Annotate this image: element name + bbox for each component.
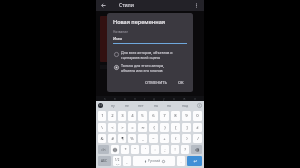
staticText: ]: [186, 125, 188, 131]
staticText: }: [164, 125, 166, 131]
staticText: Название: [113, 30, 128, 34]
staticText: к: [104, 97, 106, 101]
button[interactable]: ': [141, 145, 149, 154]
staticText: 1: [101, 113, 104, 119]
button[interactable]: ну: [110, 102, 116, 109]
button[interactable]: !: [171, 145, 179, 154]
button[interactable]: ОК: [175, 78, 187, 87]
button[interactable]: 9: [182, 111, 191, 121]
button[interactable]: ]: [182, 123, 191, 132]
staticText: сценариев всей сцены: [121, 55, 161, 60]
staticText: /: [197, 136, 199, 142]
staticText: %: [130, 136, 134, 142]
button[interactable]: 5: [138, 111, 147, 121]
button[interactable]: −: [149, 134, 158, 143]
button[interactable]: (: [171, 134, 180, 143]
staticText: ": [134, 147, 136, 152]
staticText: о: [173, 97, 175, 101]
button[interactable]: Back: [99, 1, 108, 10]
button[interactable]: %: [128, 134, 136, 143]
button[interactable]: Globe: [111, 145, 119, 154]
staticText: ОТМЕНИТЬ: [145, 80, 167, 85]
button[interactable]: Enter: [187, 156, 202, 166]
button[interactable]: /: [193, 134, 202, 143]
button[interactable]: ≈: [138, 123, 147, 132]
staticText: ОК: [178, 80, 184, 85]
staticText: Только для этого актора,: [121, 63, 165, 68]
button[interactable]: ": [131, 145, 139, 154]
button[interactable]: 0: [193, 111, 202, 121]
staticText: [: [175, 125, 177, 131]
staticText: не: [125, 103, 129, 108]
button[interactable]: }: [160, 123, 169, 132]
button[interactable]: :: [151, 145, 159, 154]
button[interactable]: 8: [171, 111, 180, 121]
button[interactable]: ): [182, 134, 191, 143]
button[interactable]: ¶: [118, 134, 126, 143]
staticText: 1/2: [115, 158, 120, 162]
button[interactable]: ≠: [193, 123, 202, 132]
button[interactable]: &: [98, 134, 106, 143]
staticText: 0: [196, 113, 199, 119]
button[interactable]: =: [128, 123, 136, 132]
staticText: 4: [131, 113, 134, 119]
staticText: &: [100, 136, 104, 142]
staticText: АБС: [101, 159, 108, 163]
staticText: 6: [152, 113, 155, 119]
button[interactable]: _: [138, 134, 147, 143]
staticText: г: [144, 97, 146, 101]
button[interactable]: не: [124, 102, 130, 109]
staticText: но: [167, 103, 172, 108]
button[interactable]: Emoji: [98, 103, 103, 108]
staticText: =: [131, 125, 134, 131]
staticText: нет: [138, 103, 144, 108]
button[interactable]: Backspace: [191, 145, 202, 154]
staticText: у: [163, 97, 165, 101]
button[interactable]: Только для этого актора,: [113, 63, 187, 73]
button[interactable]: +: [160, 134, 169, 143]
staticText: >: [121, 125, 124, 131]
staticText: <: [111, 125, 114, 131]
button[interactable]: но: [166, 102, 173, 109]
button[interactable]: 1: [98, 111, 106, 121]
staticText: ;: [164, 147, 166, 152]
button[interactable]: 3: [118, 111, 126, 121]
button[interactable]: ,: [123, 156, 131, 166]
button[interactable]: #: [108, 134, 116, 143]
button[interactable]: {: [149, 123, 158, 132]
button[interactable]: ;: [161, 145, 169, 154]
button[interactable]: нет: [137, 102, 145, 109]
button[interactable]: 7: [160, 111, 169, 121]
button[interactable]: =\<: [98, 145, 109, 154]
button[interactable]: АБС: [98, 156, 111, 166]
button[interactable]: More options: [192, 1, 201, 10]
staticText: в: [114, 97, 116, 101]
staticText: Для всех акторов, объектов и: [121, 50, 173, 55]
button[interactable]: .: [177, 156, 185, 166]
button[interactable]: *: [121, 145, 129, 154]
button[interactable]: \: [98, 123, 106, 132]
button[interactable]: 1/2: [113, 156, 121, 166]
button[interactable]: ?: [181, 145, 189, 154]
staticText: Стили: [119, 2, 134, 9]
button[interactable]: 2: [108, 111, 116, 121]
staticText: 8: [174, 113, 177, 119]
button[interactable]: ОТМЕНИТЬ: [143, 78, 169, 87]
button[interactable]: More suggestions: [197, 103, 202, 108]
button[interactable]: 4: [128, 111, 136, 121]
staticText: объекта или его клонов: [121, 68, 163, 73]
staticText: 3,4: [116, 162, 120, 165]
button[interactable]: [: [171, 123, 180, 132]
button[interactable]: 6: [149, 111, 158, 121]
staticText: 2: [111, 113, 114, 119]
button[interactable]: на: [153, 102, 159, 109]
staticText: ¶: [121, 136, 124, 142]
staticText: −: [152, 136, 155, 142]
button[interactable]: >: [118, 123, 126, 132]
button[interactable]: <: [108, 123, 116, 132]
button[interactable]: Русский: [133, 156, 175, 166]
staticText: ?: [184, 147, 186, 152]
button[interactable]: над: [181, 102, 190, 109]
staticText: ну: [111, 103, 115, 108]
button[interactable]: Для всех акторов, объектов и: [113, 50, 187, 60]
